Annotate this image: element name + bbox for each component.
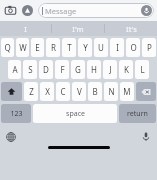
button[interactable]: It's: [105, 21, 157, 36]
button[interactable]: J: [103, 60, 117, 79]
staticText: Q: [4, 42, 11, 53]
button[interactable]: Y: [78, 38, 92, 57]
button[interactable]: P: [142, 38, 156, 57]
staticText: return: [127, 109, 148, 119]
staticText: It's: [126, 24, 137, 34]
button[interactable]: N: [104, 82, 118, 101]
staticText: K: [124, 64, 129, 75]
button[interactable]: I: [110, 38, 124, 57]
button[interactable]: O: [126, 38, 140, 57]
button[interactable]: C: [56, 82, 70, 101]
button[interactable]: Message: [38, 3, 154, 18]
button[interactable]: return: [119, 104, 156, 123]
button[interactable]: U: [94, 38, 108, 57]
staticText: J: [109, 64, 112, 75]
staticText: X: [45, 86, 50, 97]
button[interactable]: F: [55, 60, 69, 79]
staticText: T: [67, 42, 72, 53]
button[interactable]: I'm: [52, 21, 104, 36]
button[interactable]: G: [71, 60, 85, 79]
button[interactable]: A: [8, 60, 21, 79]
button[interactable]: Apps: [20, 3, 35, 18]
button[interactable]: K: [119, 60, 133, 79]
button[interactable]: H: [87, 60, 101, 79]
staticText: I: [24, 24, 27, 34]
staticText: M: [123, 86, 131, 97]
staticText: R: [51, 42, 56, 53]
staticText: space: [66, 109, 85, 119]
button[interactable]: M: [120, 82, 134, 101]
staticText: E: [35, 42, 40, 53]
button[interactable]: Dictate: [141, 5, 152, 16]
button[interactable]: I: [0, 21, 51, 36]
staticText: C: [60, 86, 66, 97]
staticText: Z: [29, 86, 34, 97]
button[interactable]: T: [62, 38, 76, 57]
button[interactable]: X: [40, 82, 54, 101]
button[interactable]: Shift: [1, 82, 22, 101]
button[interactable]: Backspace: [136, 82, 156, 101]
button[interactable]: Dictation: [139, 130, 153, 144]
staticText: N: [108, 86, 115, 97]
staticText: W: [19, 42, 27, 53]
staticText: L: [140, 64, 145, 75]
staticText: D: [43, 64, 49, 75]
button[interactable]: R: [46, 38, 60, 57]
staticText: F: [60, 64, 65, 75]
staticText: U: [98, 42, 104, 53]
button[interactable]: Q: [1, 38, 14, 57]
button[interactable]: Switch keyboard: [4, 130, 18, 144]
staticText: Message: [45, 6, 77, 16]
button[interactable]: W: [16, 38, 29, 57]
staticText: O: [130, 42, 137, 53]
staticText: A: [12, 64, 18, 75]
staticText: 123: [10, 109, 23, 119]
button[interactable]: V: [72, 82, 86, 101]
button[interactable]: Camera: [3, 3, 18, 18]
button[interactable]: B: [88, 82, 102, 101]
staticText: V: [77, 86, 82, 97]
staticText: I: [116, 42, 119, 53]
button[interactable]: Z: [24, 82, 38, 101]
button[interactable]: 123: [1, 104, 31, 123]
staticText: G: [75, 64, 81, 75]
button[interactable]: L: [135, 60, 149, 79]
staticText: B: [92, 86, 98, 97]
button[interactable]: E: [31, 38, 44, 57]
staticText: P: [147, 42, 152, 53]
staticText: Y: [83, 42, 88, 53]
staticText: H: [91, 64, 97, 75]
button[interactable]: D: [39, 60, 53, 79]
staticText: S: [28, 64, 33, 75]
button[interactable]: space: [33, 104, 117, 123]
staticText: I'm: [72, 24, 84, 34]
button[interactable]: S: [23, 60, 37, 79]
